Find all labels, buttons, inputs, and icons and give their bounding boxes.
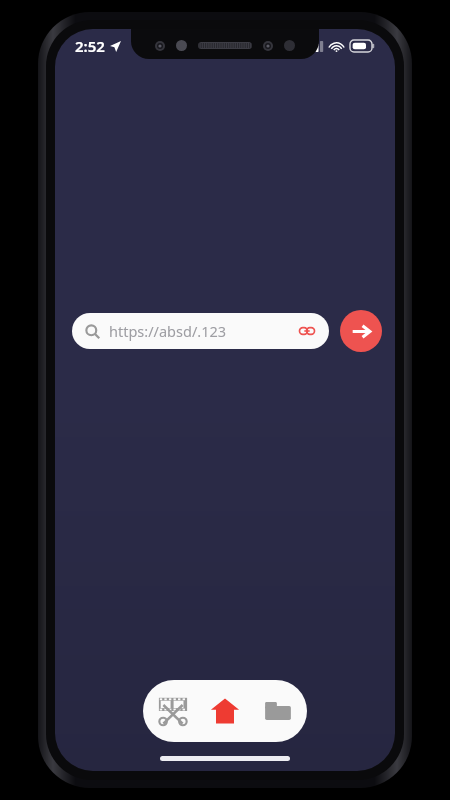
staticText: https://absd/.123 (109, 321, 298, 341)
button[interactable]: Go (340, 310, 382, 352)
button[interactable]: Files (255, 688, 301, 734)
button[interactable]: Copy link (298, 322, 316, 340)
button[interactable]: https://absd/.123 (72, 313, 329, 349)
button[interactable]: Video editor (150, 688, 196, 734)
staticText: 2:52 (75, 36, 105, 56)
button[interactable]: Home (202, 688, 248, 734)
